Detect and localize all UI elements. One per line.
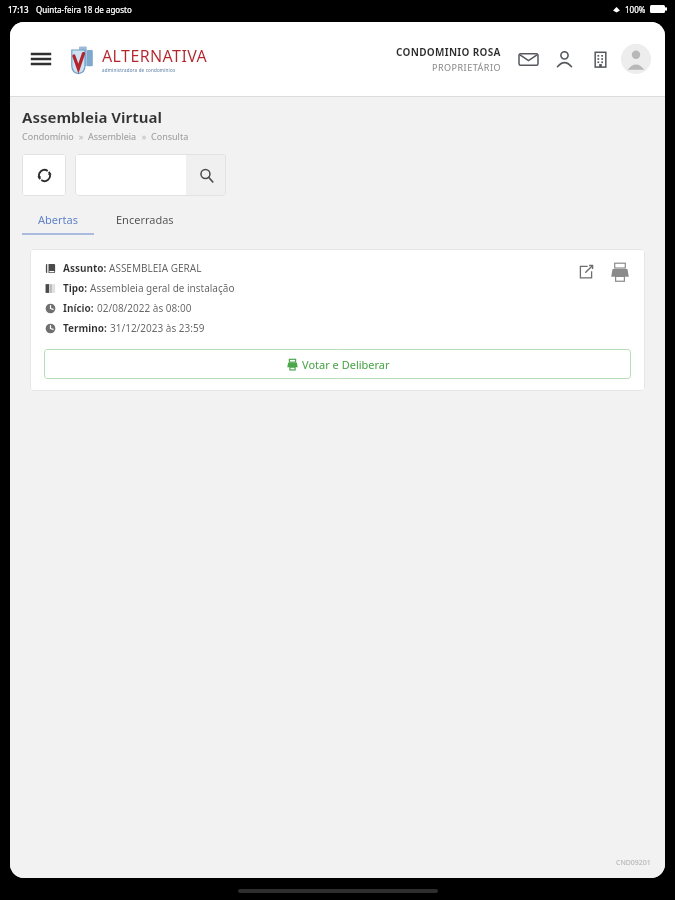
button[interactable]: Encerradas bbox=[102, 206, 188, 233]
staticText: Termino: bbox=[63, 321, 110, 335]
button[interactable]: Mensagens bbox=[513, 44, 543, 74]
staticText: Quinta-feira 18 de agosto bbox=[36, 4, 132, 15]
button[interactable]: Menu bbox=[24, 42, 58, 76]
staticText: Encerradas bbox=[116, 212, 174, 227]
staticText: Assunto: bbox=[63, 261, 109, 275]
staticText: CONDOMINIO ROSA bbox=[396, 45, 501, 59]
button[interactable]: Imprimir bbox=[609, 261, 631, 283]
staticText: Assembleia bbox=[88, 130, 137, 142]
staticText: Tipo: bbox=[63, 281, 90, 295]
staticText: Abertas bbox=[38, 212, 78, 227]
staticText: » bbox=[74, 130, 88, 142]
staticText: Votar e Deliberar bbox=[302, 357, 390, 372]
button[interactable] bbox=[75, 154, 186, 196]
staticText: 17:13 bbox=[8, 4, 29, 15]
button[interactable]: Conta bbox=[621, 44, 651, 74]
staticText: Assembleia geral de instalação bbox=[90, 281, 235, 295]
staticText: Assembleia Virtual bbox=[22, 107, 162, 127]
button[interactable]: Abertas bbox=[24, 206, 92, 233]
button[interactable]: Atualizar bbox=[22, 154, 66, 196]
staticText: 31/12/2023 às 23:59 bbox=[110, 321, 205, 335]
button[interactable]: Votar e Deliberar bbox=[44, 349, 631, 379]
button[interactable]: Perfil bbox=[549, 44, 579, 74]
staticText: CND09201 bbox=[616, 858, 651, 868]
staticText: 100% bbox=[625, 4, 646, 15]
button[interactable]: Pesquisar bbox=[186, 154, 226, 196]
staticText: Início: bbox=[63, 301, 97, 315]
staticText: 02/08/2022 às 08:00 bbox=[97, 301, 192, 315]
button[interactable]: Assunto: bbox=[30, 249, 645, 391]
staticText: » bbox=[137, 130, 151, 142]
staticText: ALTERNATIVA bbox=[102, 45, 208, 67]
staticText: ASSEMBLEIA GERAL bbox=[109, 261, 202, 275]
staticText: administradora de condomínios bbox=[102, 67, 176, 73]
staticText: Consulta bbox=[151, 130, 189, 142]
staticText: PROPRIETÁRIO bbox=[432, 61, 501, 73]
staticText: Condomínio bbox=[22, 130, 74, 142]
button[interactable]: Editar bbox=[575, 261, 597, 283]
button[interactable]: Condomínio bbox=[585, 44, 615, 74]
